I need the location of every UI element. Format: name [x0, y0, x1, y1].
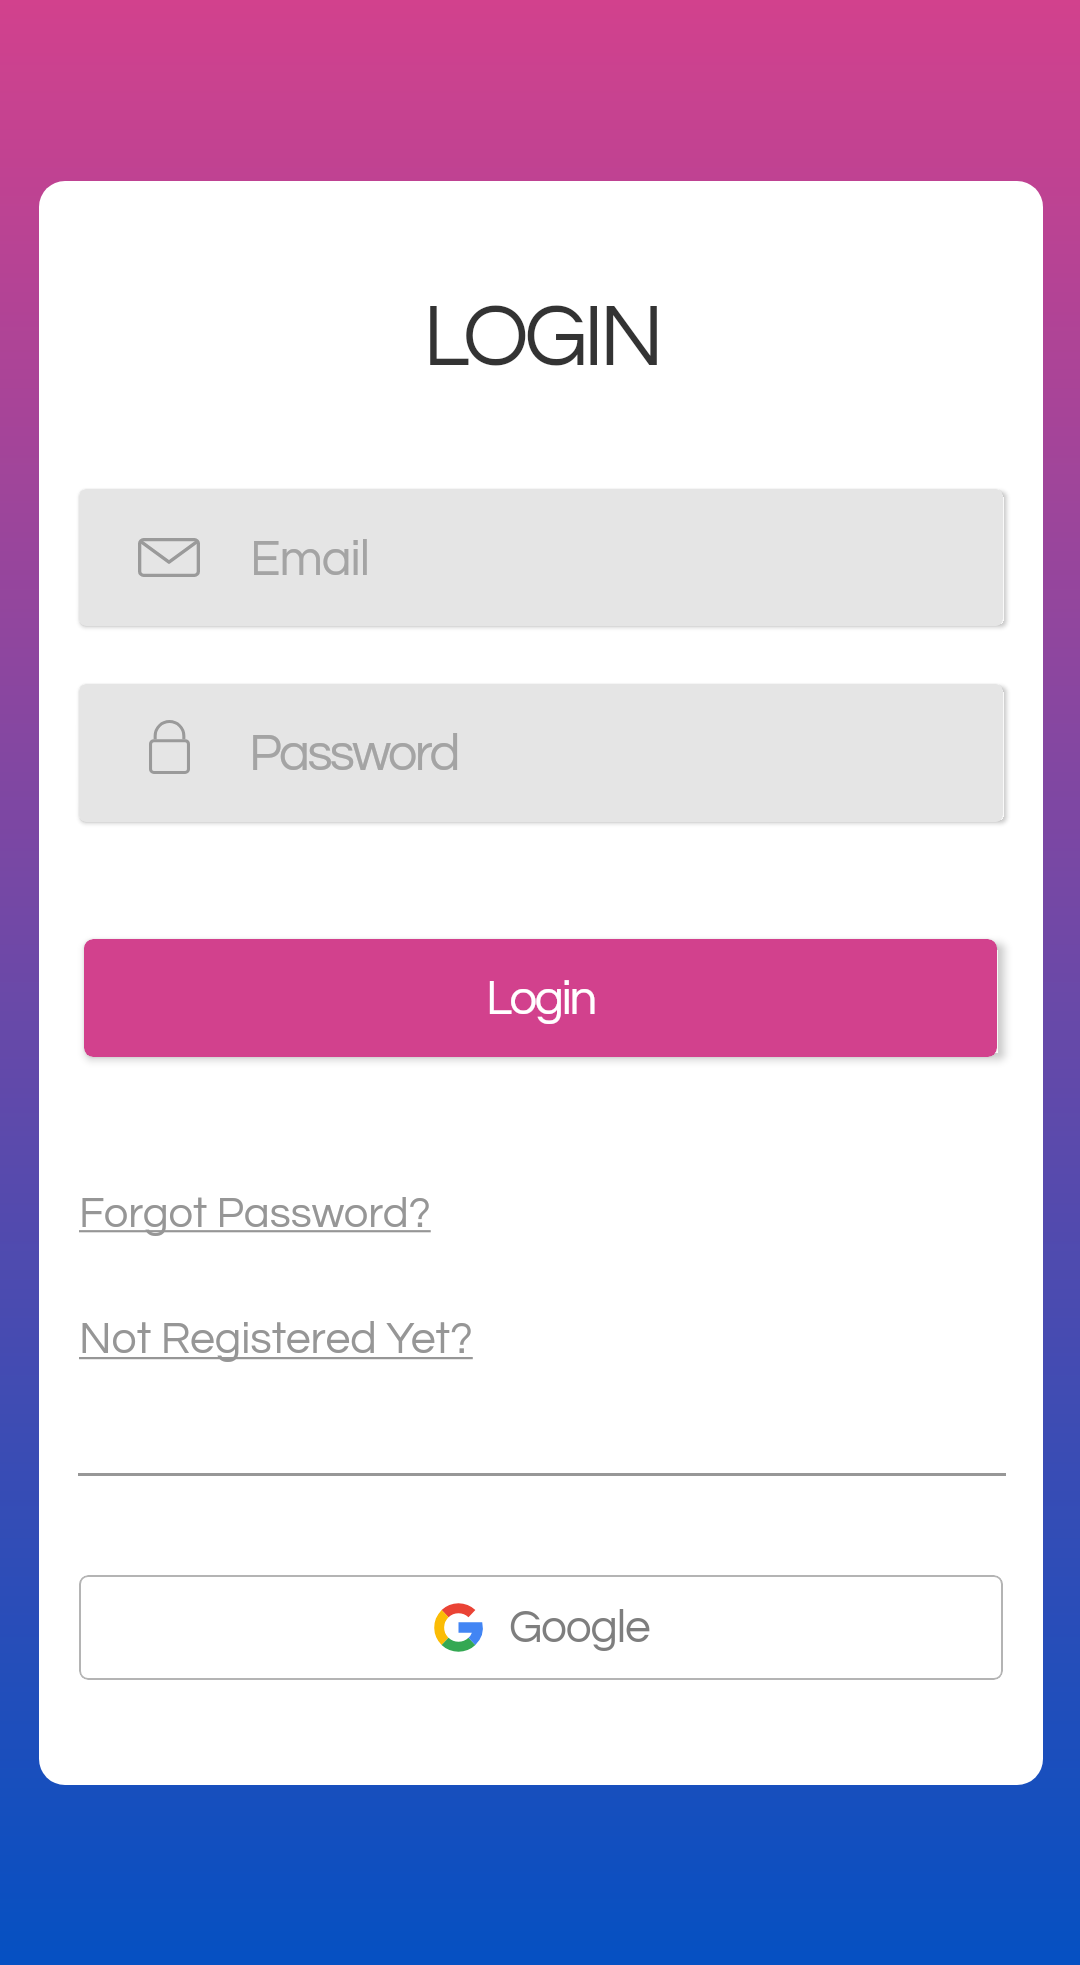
staticText: Google: [509, 1604, 650, 1651]
button[interactable]: Not Registered Yet?: [79, 1317, 473, 1363]
staticText: Login: [486, 974, 596, 1024]
staticText: LOGIN: [423, 293, 660, 384]
staticText: Not Registered Yet?: [79, 1317, 473, 1363]
button[interactable]: Google: [79, 1575, 1003, 1680]
button[interactable]: Email input: [79, 489, 1003, 626]
staticText: Password: [249, 727, 458, 781]
staticText: Forgot Password?: [79, 1191, 431, 1236]
button[interactable]: Forgot Password?: [79, 1191, 431, 1236]
staticText: Email: [250, 534, 370, 586]
button[interactable]: Login: [84, 939, 997, 1057]
button[interactable]: Password input: [79, 684, 1003, 822]
